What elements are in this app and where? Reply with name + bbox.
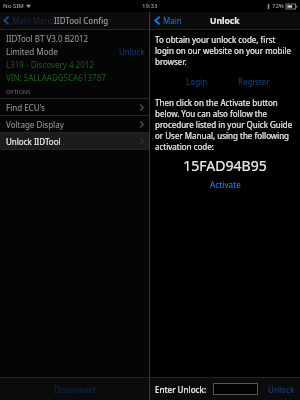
button[interactable]: Voltage Display	[0, 116, 149, 132]
staticText: Voltage Display	[6, 119, 64, 130]
staticText: IIDTool BT V3.0 B2012	[6, 33, 89, 44]
staticText: Unlock IIDTool	[6, 136, 61, 147]
staticText: VIN: SALLAADG5CA613787	[6, 72, 106, 83]
staticText: 19:33	[142, 2, 158, 10]
staticText: IIDTool Config	[54, 15, 109, 26]
staticText: Unlock	[210, 15, 240, 27]
button[interactable]: Login	[186, 76, 208, 87]
staticText: 72%	[272, 2, 284, 10]
button[interactable]: Disconnect	[0, 378, 149, 400]
staticText: Find ECU's	[6, 102, 45, 113]
button[interactable]: Unlock IIDTool	[0, 133, 149, 149]
button[interactable]: Main	[154, 15, 182, 26]
button[interactable]: Main Menu	[3, 15, 55, 26]
button[interactable]: Unlock code input field	[213, 383, 258, 395]
button[interactable]: Register	[238, 76, 270, 87]
button[interactable]: Unlock	[119, 46, 145, 57]
button[interactable]: Find ECU's	[0, 99, 149, 115]
staticText: OPTIONS	[6, 88, 31, 95]
staticText: Limited Mode	[6, 46, 58, 57]
staticText: Main	[163, 15, 182, 26]
staticText: Enter Unlock:	[155, 384, 207, 395]
staticText: 15FAD94B95	[150, 156, 300, 175]
staticText: To obtain your unlock code, first login …	[155, 34, 295, 67]
staticText: L319 - Discovery 4 2012	[6, 59, 94, 70]
button[interactable]: Unlock	[268, 384, 295, 395]
staticText: Then click on the Activate button below.…	[155, 97, 295, 152]
staticText: No SIM	[3, 2, 24, 10]
button[interactable]: Activate	[210, 179, 241, 190]
staticText: Main Menu	[12, 15, 55, 26]
staticText: Disconnect	[54, 384, 96, 395]
